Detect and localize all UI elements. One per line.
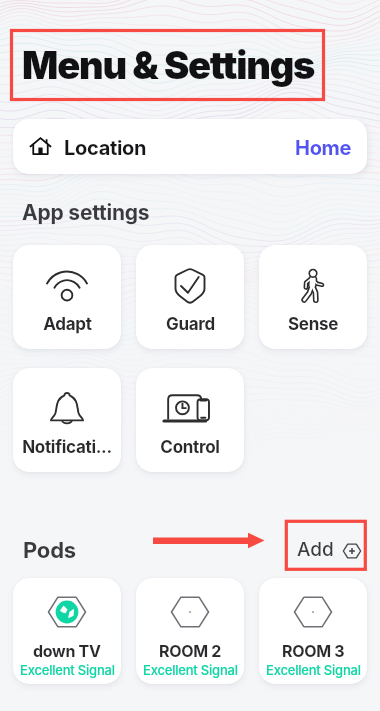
button[interactable]: Location — [13, 119, 367, 174]
button[interactable]: ROOM 2 — [136, 578, 244, 684]
button[interactable]: Notificati... — [13, 368, 121, 472]
button[interactable]: down TV — [13, 578, 121, 684]
button[interactable]: Guard — [136, 245, 244, 349]
staticText: Excellent Signal — [266, 662, 361, 678]
staticText: Home — [295, 136, 352, 160]
staticText: ROOM 2 — [159, 641, 222, 660]
button[interactable]: Sense — [259, 245, 367, 349]
staticText: Menu & Settings — [22, 42, 315, 88]
staticText: Adapt — [43, 314, 92, 335]
staticText: Pods — [23, 537, 76, 564]
staticText: Location — [64, 136, 147, 160]
staticText: Guard — [166, 314, 215, 335]
staticText: Notificati... — [22, 437, 112, 458]
staticText: down TV — [33, 641, 101, 660]
staticText: Add — [297, 538, 334, 561]
staticText: Sense — [288, 314, 338, 335]
button[interactable]: Adapt — [13, 245, 121, 349]
staticText: App settings — [22, 200, 150, 225]
button[interactable]: Add — [297, 538, 361, 561]
button[interactable]: Control — [136, 368, 244, 472]
staticText: Control — [160, 437, 220, 458]
staticText: Excellent Signal — [20, 662, 115, 678]
staticText: Excellent Signal — [143, 662, 238, 678]
button[interactable]: ROOM 3 — [259, 578, 367, 684]
staticText: ROOM 3 — [282, 641, 345, 660]
